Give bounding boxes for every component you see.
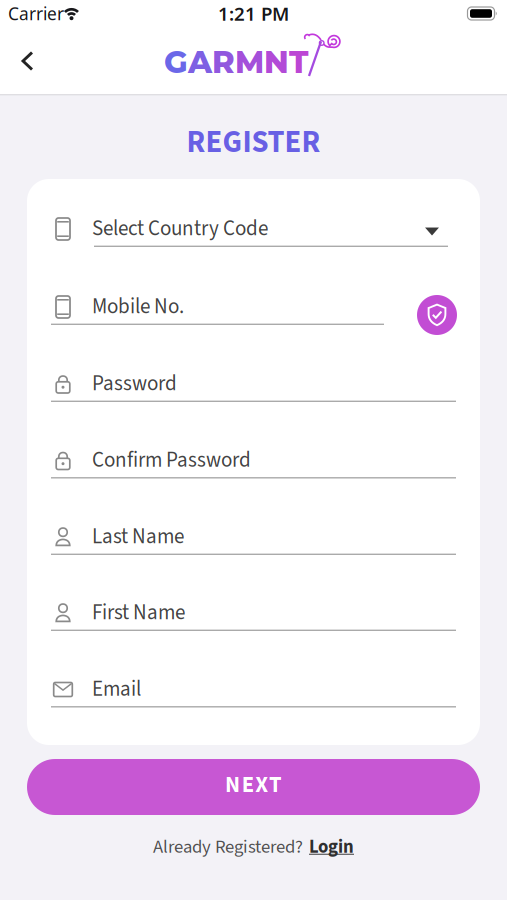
staticText: Carrier [8,2,64,25]
button[interactable]: Email [51,667,456,707]
staticText: REGISTER [186,121,320,164]
button[interactable]: Back [5,43,49,78]
staticText: G [164,43,188,81]
staticText: Last Name [92,522,184,552]
staticText: Already Registered? [153,834,303,860]
staticText: T [289,43,308,81]
staticText: Password [92,369,177,399]
button[interactable]: Login [309,834,354,860]
staticText: 1:21 PM [218,1,289,26]
button[interactable]: Last Name [51,515,456,555]
staticText: A [188,43,212,81]
staticText: M [235,43,264,81]
staticText: N [264,43,289,81]
button[interactable]: Confirm Password [51,438,456,478]
staticText: R [212,43,235,81]
button[interactable]: First Name [51,591,456,631]
staticText: Email [92,674,141,704]
staticText: Select Country Code [92,214,268,244]
staticText: First Name [92,598,185,628]
staticText: NEXT [225,769,282,801]
staticText: Mobile No. [92,292,184,322]
button[interactable]: Mobile No. [51,285,456,325]
button[interactable]: Select Country Code [51,207,456,247]
button[interactable]: NEXT [27,759,480,815]
staticText: Confirm Password [92,445,251,475]
button[interactable]: Verify mobile number [417,295,457,335]
button[interactable]: Password [51,362,456,402]
staticText: Login [309,834,354,860]
